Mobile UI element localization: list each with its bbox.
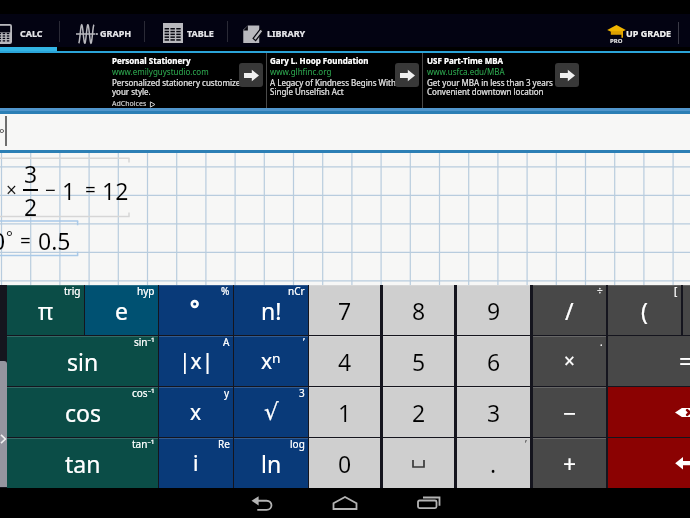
staticText: = — [679, 344, 690, 378]
button[interactable]: Personal Stationery — [0, 53, 266, 108]
button[interactable]: Home — [303, 488, 387, 518]
button[interactable]: Calc tab — [0, 14, 59, 51]
button[interactable]: PRO — [607, 14, 679, 51]
staticText: A — [223, 335, 230, 349]
staticText: 6 — [487, 346, 501, 377]
button[interactable]: − — [533, 387, 606, 437]
button[interactable]: 0 — [309, 438, 380, 488]
button[interactable]: √ — [234, 387, 308, 437]
button[interactable]: × — [533, 336, 606, 386]
staticText: tan — [65, 448, 101, 479]
button[interactable]: 7 — [309, 285, 380, 335]
button[interactable] — [683, 285, 690, 335]
staticText: GRAPH — [100, 27, 132, 39]
staticText: cos — [65, 397, 101, 428]
button[interactable]: . — [457, 438, 530, 488]
staticText: Get your MBA in less than 3 years — [427, 77, 553, 88]
staticText: − — [563, 397, 577, 428]
staticText: + — [563, 448, 577, 479]
button[interactable]: |x| — [159, 336, 233, 386]
button[interactable]: Show more keys — [0, 361, 7, 487]
button[interactable]: Degrees — [159, 285, 233, 335]
staticText: [ — [674, 284, 678, 298]
staticText: ( — [641, 295, 648, 326]
button[interactable]: π — [7, 285, 84, 335]
staticText: . — [600, 335, 603, 349]
button[interactable]: 8 — [383, 285, 454, 335]
staticText: = — [85, 177, 96, 203]
staticText: cos⁻¹ — [132, 386, 155, 400]
staticText: 8 — [412, 295, 426, 326]
button[interactable]: 9 — [457, 285, 530, 335]
staticText: √ — [264, 399, 279, 426]
button[interactable]: cos — [7, 387, 158, 437]
staticText: = — [20, 228, 31, 254]
button[interactable]: + — [533, 438, 606, 488]
staticText: 3 — [299, 386, 305, 400]
staticText: LIBRARY — [267, 27, 306, 39]
staticText: nCr — [288, 284, 305, 298]
button[interactable]: Space — [383, 438, 454, 488]
staticText: |x| — [179, 347, 214, 376]
staticText: 0 — [338, 448, 352, 479]
staticText: n! — [261, 295, 282, 326]
staticText: trig — [64, 284, 81, 298]
button[interactable]: Recent apps — [390, 488, 474, 518]
button[interactable]: Library tab — [227, 14, 317, 51]
button[interactable]: Back — [210, 488, 294, 518]
staticText: AdChoices — [112, 99, 149, 109]
button[interactable]: Graph tab — [59, 14, 144, 51]
button[interactable]: sin — [7, 336, 158, 386]
button[interactable]: Enter — [608, 438, 690, 488]
staticText: Single Unselfish Act — [270, 86, 344, 97]
button[interactable]: USF Part-Time MBA — [423, 53, 690, 108]
button[interactable]: Open advertisement — [395, 63, 419, 87]
staticText: 2 — [412, 397, 426, 428]
staticText: 4 — [338, 346, 352, 377]
button[interactable]: Open advertisement — [239, 63, 263, 87]
staticText: . — [490, 448, 497, 479]
button[interactable]: 1 — [309, 387, 380, 437]
button[interactable]: ln — [234, 438, 308, 488]
staticText: USF Part-Time MBA — [427, 55, 504, 66]
staticText: 5 — [412, 346, 426, 377]
button[interactable]: i — [159, 438, 233, 488]
staticText: PRO — [610, 37, 623, 45]
staticText: ÷ — [597, 284, 603, 298]
staticText: ln — [261, 448, 282, 479]
staticText: tan⁻¹ — [132, 437, 155, 451]
button[interactable]: n! — [234, 285, 308, 335]
staticText: sin⁻¹ — [134, 335, 155, 349]
button[interactable]: Table tab — [144, 14, 227, 51]
staticText: y — [224, 386, 230, 400]
staticText: your style. — [112, 86, 151, 97]
button[interactable]: 4 — [309, 336, 380, 386]
staticText: xⁿ — [261, 347, 281, 376]
button[interactable]: Gary L. Hoop Foundation — [267, 53, 422, 108]
button[interactable]: / — [533, 285, 606, 335]
staticText: CALC — [20, 27, 43, 39]
button[interactable]: 3 — [457, 387, 530, 437]
button[interactable]: xⁿ — [234, 336, 308, 386]
button[interactable]: ( — [608, 285, 681, 335]
button[interactable]: Backspace — [608, 387, 690, 437]
button[interactable]: x — [159, 387, 233, 437]
staticText: 2 — [24, 191, 38, 222]
staticText: 0 — [0, 225, 6, 256]
button[interactable]: tan — [7, 438, 158, 488]
staticText: ’ — [303, 335, 305, 349]
button[interactable]: e — [85, 285, 158, 335]
button[interactable]: Open advertisement — [555, 63, 579, 87]
staticText: sin — [67, 346, 99, 377]
button[interactable]: 2 — [383, 387, 454, 437]
staticText: TABLE — [187, 27, 214, 39]
button[interactable]: 6 — [457, 336, 530, 386]
staticText: Personal Stationery — [112, 55, 191, 66]
staticText: www.usfca.edu/MBA — [427, 66, 505, 77]
button[interactable]: 5 — [383, 336, 454, 386]
button[interactable]: = — [608, 336, 690, 386]
staticText: hyp — [137, 284, 155, 298]
staticText: ° — [0, 124, 5, 142]
staticText: www.emilyguystudio.com — [112, 66, 209, 77]
staticText: 3 — [487, 397, 501, 428]
